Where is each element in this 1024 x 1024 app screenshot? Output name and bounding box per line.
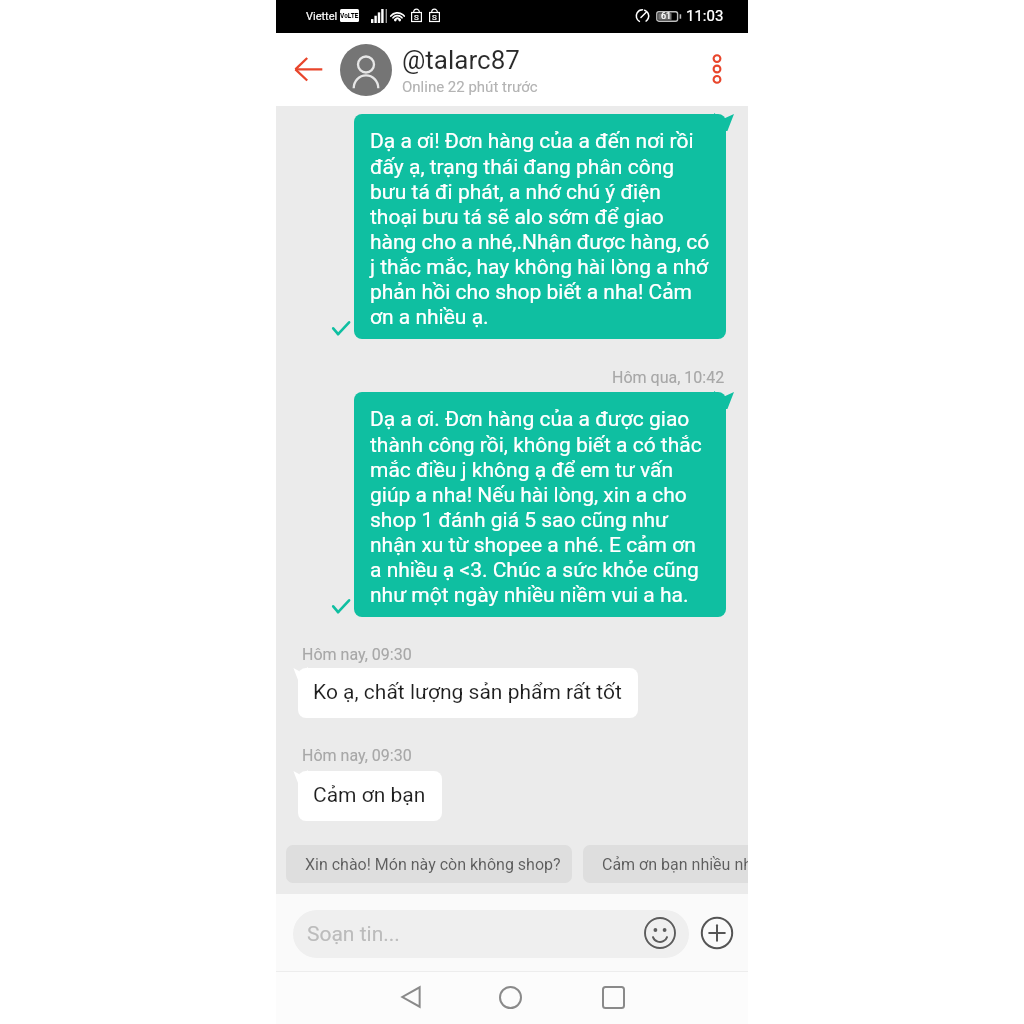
staticText: Hôm qua, 10:42	[612, 368, 725, 387]
staticText: @talarc87	[402, 45, 520, 75]
staticText: VoLTE	[340, 12, 359, 20]
staticText: Dạ a ơi. Đơn hàng của a được giao thành …	[370, 407, 711, 607]
button[interactable]: Back	[387, 973, 435, 1021]
button[interactable]: Emoji	[642, 915, 678, 951]
staticText: Soạn tin...	[307, 922, 400, 947]
staticText: Hôm nay, 09:30	[302, 746, 412, 765]
button[interactable]: Add attachment	[699, 915, 735, 951]
staticText: 61	[661, 11, 672, 22]
button[interactable]: Ko ạ, chất lượng sản phẩm rất tốt	[298, 668, 638, 718]
staticText: Cảm ơn bạn	[313, 783, 426, 808]
button[interactable]: Dạ a ơi. Đơn hàng của a được giao thành …	[354, 392, 726, 617]
staticText: 11:03	[686, 7, 724, 25]
button[interactable]: Dạ a ơi! Đơn hàng của a đến nơi rồi đấy …	[354, 114, 726, 339]
button[interactable]: Xin chào! Món này còn không shop?	[286, 845, 572, 883]
staticText: Xin chào! Món này còn không shop?	[305, 855, 561, 874]
button[interactable]: Back	[276, 45, 346, 95]
staticText: Viettel	[306, 10, 338, 23]
button[interactable]: Home	[486, 973, 534, 1021]
button[interactable]: Cảm ơn bạn	[298, 771, 442, 821]
button[interactable]: Recent apps	[589, 973, 637, 1021]
button[interactable]: Soạn tin...	[293, 910, 689, 958]
staticText: Online 22 phút trước	[402, 78, 538, 96]
staticText: Dạ a ơi! Đơn hàng của a đến nơi rồi đấy …	[370, 129, 711, 329]
staticText: Ko ạ, chất lượng sản phẩm rất tốt	[313, 680, 622, 705]
staticText: S	[414, 13, 419, 22]
staticText: Hôm nay, 09:30	[302, 645, 412, 664]
button[interactable]: Cảm ơn bạn nhiều nhé	[583, 845, 748, 883]
button[interactable]: Profile avatar	[340, 44, 392, 96]
button[interactable]: More options	[697, 49, 737, 89]
staticText: Cảm ơn bạn nhiều nhé	[602, 855, 748, 874]
staticText: S	[432, 13, 437, 22]
